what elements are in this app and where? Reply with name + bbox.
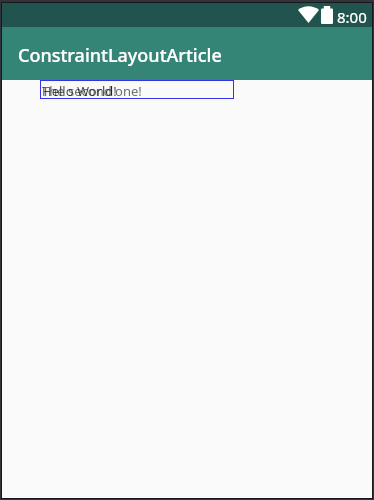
other: Wi-Fi signal	[298, 6, 319, 23]
button[interactable]: The second one!	[40, 80, 234, 99]
other: Battery	[321, 6, 333, 24]
staticText: The second one!	[42, 82, 142, 100]
staticText: 8:00	[337, 7, 367, 27]
staticText: Hello World!	[42, 82, 117, 100]
staticText: ConstraintLayoutArticle	[18, 43, 222, 68]
